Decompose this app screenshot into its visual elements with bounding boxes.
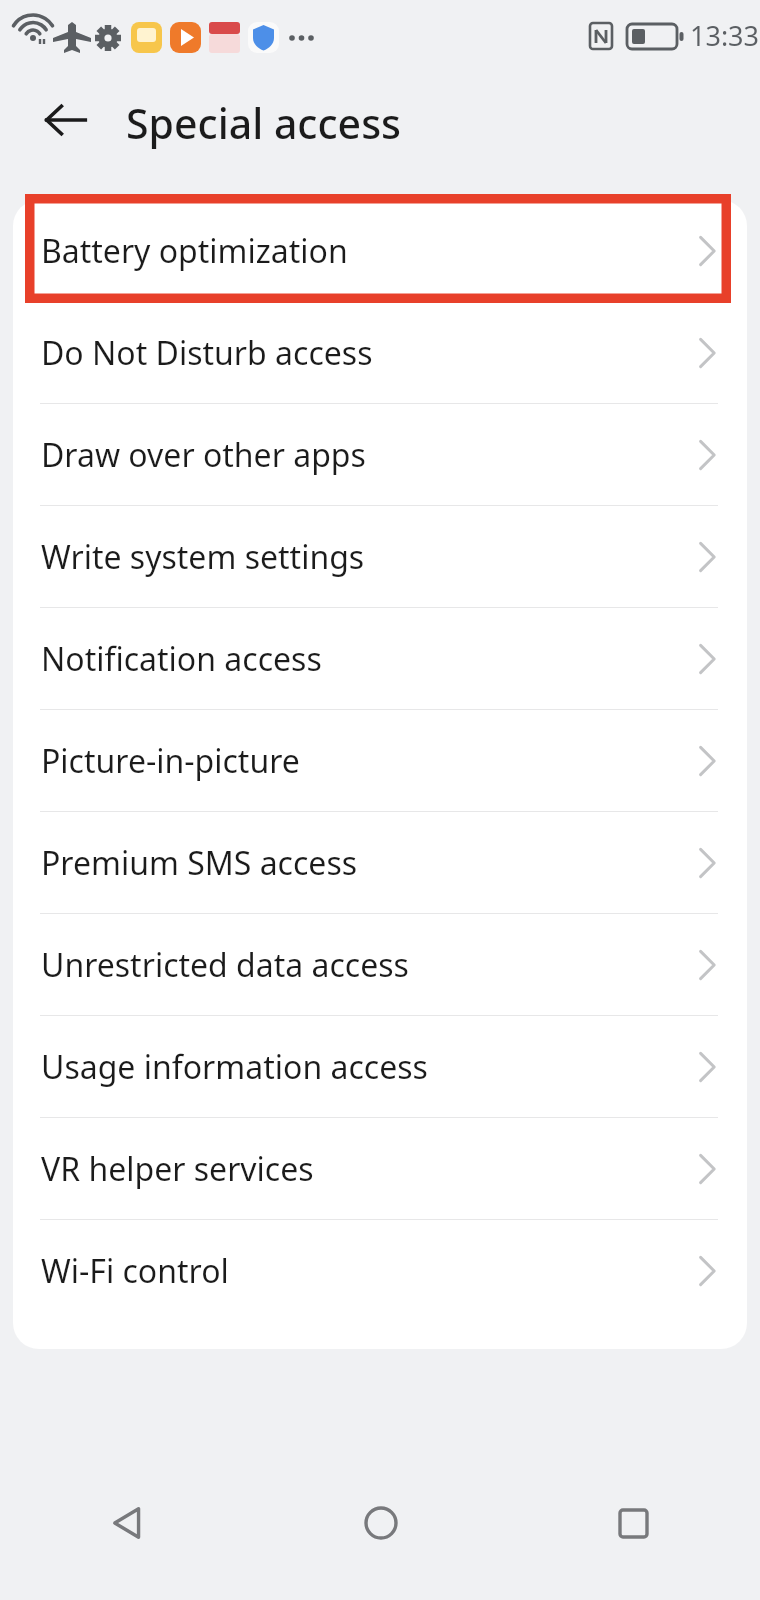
button[interactable]: Premium SMS access — [13, 812, 747, 913]
staticText: Draw over other apps — [41, 433, 697, 477]
staticText: Do Not Disturb access — [41, 331, 697, 375]
staticText: Premium SMS access — [41, 841, 697, 885]
button[interactable]: Write system settings — [13, 506, 747, 607]
button[interactable]: Draw over other apps — [13, 404, 747, 505]
button[interactable]: Home — [254, 1468, 507, 1578]
staticText: Usage information access — [41, 1045, 697, 1089]
staticText: VR helper services — [41, 1147, 697, 1191]
button[interactable]: Picture-in-picture — [13, 710, 747, 811]
button[interactable]: Back — [0, 1468, 254, 1578]
staticText: Write system settings — [41, 535, 697, 579]
button[interactable]: Wi-Fi control — [13, 1220, 747, 1321]
button[interactable]: Usage information access — [13, 1016, 747, 1117]
staticText: Wi-Fi control — [41, 1249, 697, 1293]
staticText: Notification access — [41, 637, 697, 681]
staticText: Special access — [126, 95, 401, 151]
button[interactable]: VR helper services — [13, 1118, 747, 1219]
staticText: Unrestricted data access — [41, 943, 697, 987]
button[interactable]: Unrestricted data access — [13, 914, 747, 1015]
button[interactable]: Recent apps — [507, 1468, 760, 1578]
button[interactable]: Notification access — [13, 608, 747, 709]
button[interactable]: Back — [26, 80, 106, 160]
button[interactable]: Do Not Disturb access — [13, 302, 747, 403]
button[interactable]: Battery optimization — [13, 200, 747, 301]
staticText: Picture-in-picture — [41, 739, 697, 783]
staticText: 13:33 — [690, 17, 760, 54]
staticText: Battery optimization — [41, 229, 697, 273]
